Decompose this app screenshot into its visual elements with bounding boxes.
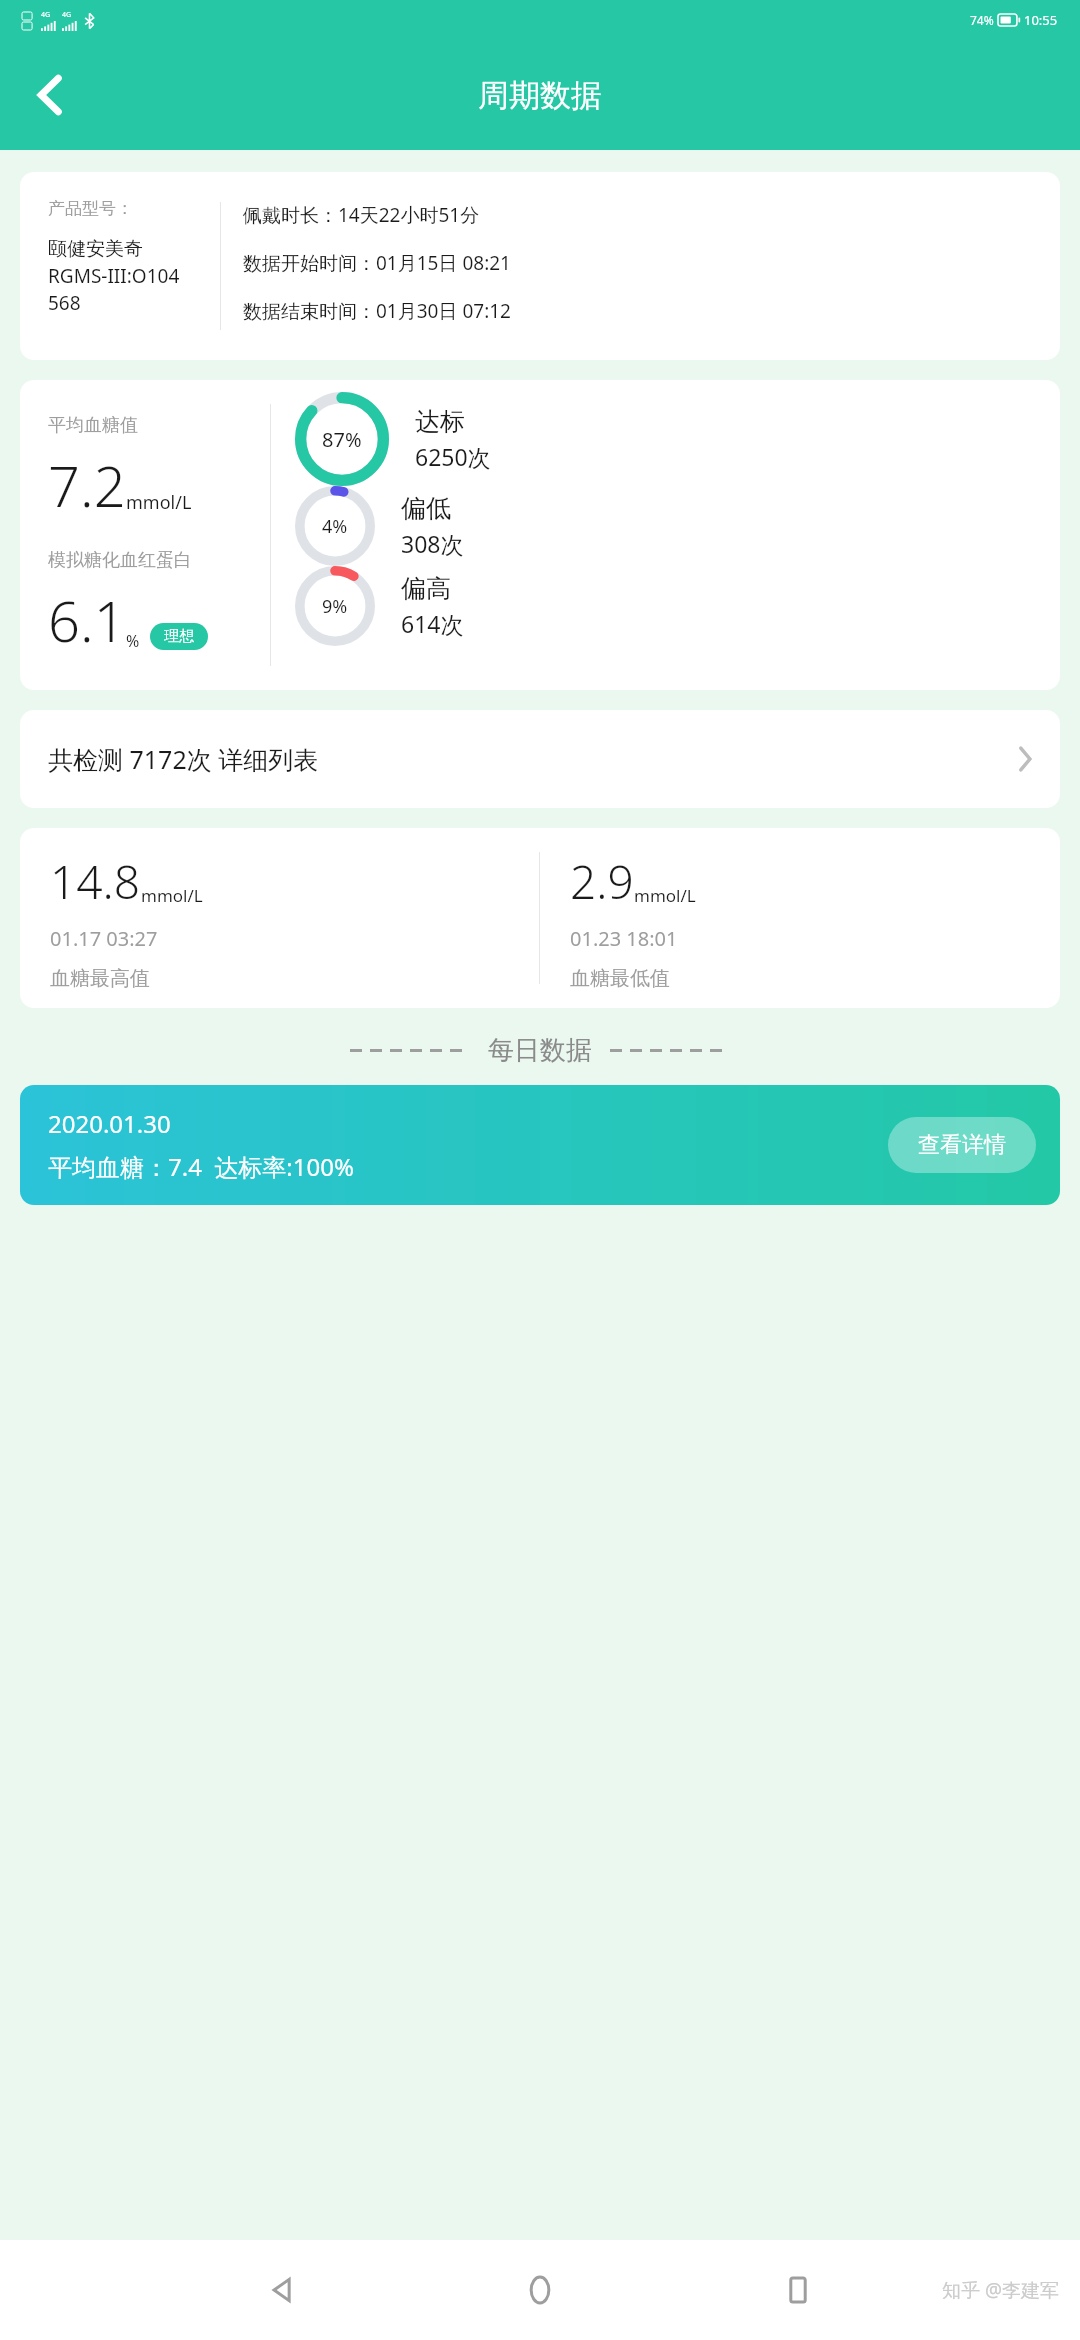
staticText: 01.23 18:01	[570, 925, 678, 952]
staticText: 4G	[41, 10, 51, 20]
staticText: 6250次	[415, 441, 491, 472]
button[interactable]: 2020.01.30	[20, 1085, 1060, 1205]
staticText: 血糖最高值	[50, 966, 150, 991]
staticText: 知乎 @李建军	[942, 2277, 1060, 2303]
staticText: 4%	[322, 514, 348, 539]
staticText: 数据结束时间：01月30日 07:12	[243, 298, 511, 324]
staticText: 数据开始时间：01月15日 08:21	[243, 250, 511, 276]
staticText: 01.17 03:27	[50, 925, 158, 952]
staticText: 614次	[401, 608, 464, 639]
staticText: 达标	[415, 406, 465, 437]
staticText: 颐健安美奇 RGMS-III:O104 568	[48, 237, 180, 316]
staticText: 平均血糖值	[48, 414, 138, 437]
staticText: 产品型号：	[48, 198, 133, 219]
staticText: 74%	[970, 12, 994, 28]
staticText: 平均血糖：7.4 达标率:100%	[48, 1150, 354, 1183]
staticText: 每日数据	[488, 1034, 592, 1067]
staticText: 周期数据	[478, 76, 602, 115]
button[interactable]: 理想	[150, 623, 208, 650]
staticText: 理想	[164, 627, 194, 646]
staticText: 87%	[322, 426, 362, 453]
staticText: 2.9	[570, 850, 634, 913]
staticText: 偏低	[401, 493, 451, 524]
staticText: 模拟糖化血红蛋白	[48, 549, 192, 572]
staticText: mmol/L	[634, 884, 696, 907]
staticText: 9%	[322, 594, 348, 619]
staticText: %	[126, 630, 140, 652]
staticText: 2020.01.30	[48, 1107, 171, 1140]
staticText: 14.8	[50, 850, 141, 913]
staticText: mmol/L	[126, 490, 192, 515]
button[interactable]: 查看详情	[888, 1117, 1036, 1173]
staticText: 308次	[401, 528, 464, 559]
button[interactable]: Home	[505, 2255, 575, 2325]
staticText: 偏高	[401, 573, 451, 604]
button[interactable]: Recents	[763, 2255, 833, 2325]
staticText: mmol/L	[141, 884, 203, 907]
staticText: 佩戴时长：14天22小时51分	[243, 202, 480, 228]
staticText: 4G	[62, 10, 72, 20]
button[interactable]: Back	[22, 67, 78, 123]
staticText: 6.1	[48, 582, 126, 658]
button[interactable]: Back	[248, 2255, 318, 2325]
staticText: 7.2	[48, 447, 126, 523]
button[interactable]: 共检测 7172次 详细列表	[20, 710, 1060, 808]
staticText: 共检测 7172次 详细列表	[48, 742, 319, 776]
staticText: 查看详情	[918, 1131, 1006, 1159]
staticText: 10:55	[1024, 11, 1058, 29]
staticText: 血糖最低值	[570, 966, 670, 991]
